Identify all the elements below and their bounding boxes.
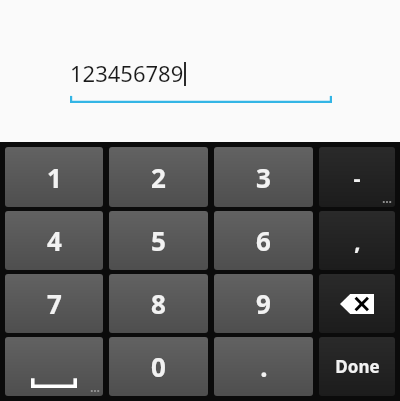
button[interactable]: 1 [5,147,103,207]
button[interactable]: 0 [109,337,208,396]
staticText: 4 [47,223,62,258]
staticText: 8 [151,286,166,321]
staticText: , [354,226,361,256]
staticText: 1 [47,160,62,195]
button[interactable]: 5 [109,211,208,270]
button[interactable]: . [214,337,313,396]
button[interactable]: Done [319,337,395,396]
button[interactable]: 3 [214,147,313,207]
button[interactable]: Space [5,337,103,396]
button[interactable]: 2 [109,147,208,207]
button[interactable]: 8 [109,274,208,333]
staticText: 9 [256,286,271,321]
staticText: 2 [151,160,166,195]
button[interactable]: , [319,211,395,270]
button[interactable]: - [319,147,395,207]
button[interactable]: 4 [5,211,103,270]
staticText: 5 [151,223,166,258]
staticText: 3 [256,160,271,195]
button[interactable]: Backspace [319,274,395,333]
staticText: 6 [256,223,271,258]
staticText: . [260,349,268,384]
staticText: 0 [151,349,166,384]
staticText: 7 [47,286,62,321]
button[interactable]: 6 [214,211,313,270]
staticText: 123456789 [70,58,184,88]
button[interactable]: 7 [5,274,103,333]
button[interactable]: 9 [214,274,313,333]
staticText: Done [335,355,380,378]
staticText: - [353,162,361,192]
button[interactable]: 123456789 [70,58,332,103]
